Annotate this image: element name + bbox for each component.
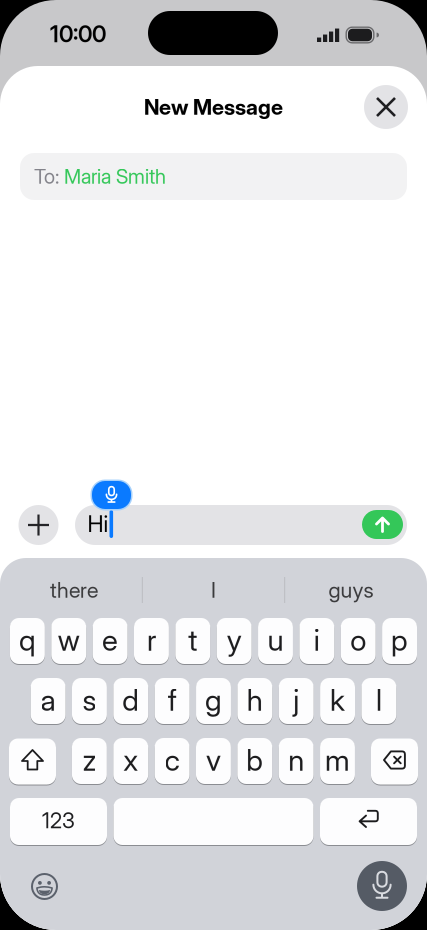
staticText: j bbox=[293, 683, 299, 717]
button[interactable]: guys bbox=[281, 570, 421, 610]
button[interactable]: w bbox=[51, 617, 86, 664]
button[interactable]: x bbox=[113, 737, 148, 784]
staticText: To: bbox=[34, 165, 59, 188]
button[interactable]: m bbox=[320, 737, 355, 784]
button[interactable]: h bbox=[237, 677, 272, 724]
button[interactable]: c bbox=[155, 737, 190, 784]
button[interactable] bbox=[371, 738, 418, 785]
button[interactable]: k bbox=[320, 677, 355, 724]
staticText: Maria Smith bbox=[64, 165, 166, 188]
staticText: a bbox=[41, 683, 56, 717]
button[interactable]: t bbox=[175, 617, 210, 664]
staticText: p bbox=[391, 623, 408, 657]
button[interactable]: y bbox=[217, 617, 252, 664]
button[interactable]: i bbox=[299, 617, 334, 664]
staticText: t bbox=[188, 623, 197, 657]
button[interactable]: n bbox=[279, 737, 314, 784]
button[interactable]: To: bbox=[20, 153, 407, 200]
button[interactable] bbox=[113, 797, 313, 845]
button[interactable] bbox=[364, 85, 408, 129]
staticText: i bbox=[314, 623, 320, 657]
button[interactable]: f bbox=[155, 677, 190, 724]
staticText: n bbox=[288, 743, 304, 777]
button[interactable]: z bbox=[72, 737, 107, 784]
staticText: c bbox=[165, 743, 180, 777]
staticText: s bbox=[82, 683, 96, 717]
staticText: b bbox=[246, 743, 263, 777]
staticText: I bbox=[211, 577, 216, 603]
button[interactable]: r bbox=[134, 617, 169, 664]
button[interactable]: 123 bbox=[10, 797, 107, 845]
button[interactable] bbox=[18, 505, 58, 545]
staticText: z bbox=[82, 743, 96, 777]
staticText: g bbox=[205, 683, 222, 717]
staticText: v bbox=[206, 743, 221, 777]
staticText: h bbox=[247, 683, 263, 717]
staticText: r bbox=[147, 623, 156, 657]
staticText: guys bbox=[328, 577, 373, 603]
staticText: y bbox=[227, 623, 242, 657]
button[interactable]: v bbox=[196, 737, 231, 784]
staticText: q bbox=[19, 623, 36, 657]
staticText: New Message bbox=[144, 94, 283, 120]
staticText: there bbox=[50, 577, 98, 603]
button[interactable]: q bbox=[10, 617, 45, 664]
button[interactable] bbox=[320, 797, 417, 845]
button[interactable]: u bbox=[258, 617, 293, 664]
button[interactable] bbox=[357, 861, 407, 911]
button[interactable]: d bbox=[113, 677, 148, 724]
staticText: d bbox=[122, 683, 139, 717]
staticText: x bbox=[123, 743, 138, 777]
staticText: u bbox=[267, 623, 283, 657]
staticText: 10:00 bbox=[50, 21, 106, 47]
staticText: 123 bbox=[42, 808, 75, 833]
button[interactable]: l bbox=[361, 677, 396, 724]
button[interactable]: s bbox=[72, 677, 107, 724]
button[interactable] bbox=[362, 510, 403, 539]
staticText: w bbox=[58, 623, 80, 657]
button[interactable]: g bbox=[196, 677, 231, 724]
button[interactable] bbox=[9, 738, 56, 785]
button[interactable]: e bbox=[93, 617, 127, 664]
button[interactable]: there bbox=[4, 570, 144, 610]
button[interactable]: I bbox=[143, 570, 283, 610]
staticText: Hi bbox=[87, 511, 108, 537]
button[interactable]: a bbox=[31, 677, 66, 724]
staticText: f bbox=[168, 683, 177, 717]
button[interactable]: j bbox=[279, 677, 314, 724]
staticText: m bbox=[325, 743, 350, 777]
staticText: l bbox=[376, 683, 382, 717]
button[interactable]: b bbox=[237, 737, 272, 784]
staticText: e bbox=[102, 623, 118, 657]
button[interactable]: o bbox=[341, 617, 376, 664]
button[interactable]: p bbox=[382, 617, 417, 664]
staticText: o bbox=[350, 623, 366, 657]
button[interactable] bbox=[31, 873, 58, 900]
staticText: k bbox=[330, 683, 345, 717]
